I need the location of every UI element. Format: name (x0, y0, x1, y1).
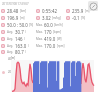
staticText: [m] (11, 56, 16, 60)
staticText: 80.7 (15, 49, 24, 55)
staticText: 170 (44, 29, 52, 35)
staticText: [bpm] (53, 30, 61, 34)
button[interactable]: Avg. (0, 28, 35, 35)
button[interactable]: 235.9 (65, 7, 100, 14)
staticText: [%] (81, 16, 86, 20)
button[interactable]: Max. (35, 35, 65, 42)
staticText: / (28, 44, 30, 48)
staticText: 146 (15, 36, 23, 42)
button[interactable]: Max. (35, 28, 65, 35)
staticText: [km/h] (54, 23, 63, 27)
button[interactable]: Avg. (0, 35, 35, 42)
staticText: Avg. (7, 50, 14, 54)
button[interactable]: 50.0 : 50.0 (0, 21, 35, 28)
staticText: Avg. (7, 30, 14, 34)
staticText: [m/kg] (52, 16, 61, 20)
button[interactable]: Max. (35, 42, 65, 49)
button[interactable]: Avg. (0, 42, 35, 49)
staticText: / (25, 30, 27, 34)
button[interactable]: 3.02 (35, 14, 65, 21)
staticText: 30.7 (15, 29, 24, 35)
button[interactable]: 28.48 (0, 7, 35, 14)
staticText: 28.48 (7, 8, 19, 14)
staticText: / (24, 37, 26, 41)
staticText: 196.9 (7, 15, 19, 21)
staticText: [km] (20, 9, 26, 13)
button[interactable]: Max. (35, 21, 65, 28)
staticText: Avg. (7, 44, 14, 48)
button[interactable]: 0:55:42 (35, 7, 65, 14)
staticText: Max. (36, 23, 43, 27)
staticText: 40 (8, 57, 11, 61)
staticText: 3.02 (42, 15, 51, 21)
staticText: 60.0 (44, 22, 53, 28)
staticText: [m] (85, 9, 90, 13)
staticText: / (25, 50, 27, 54)
staticText: Avg. (7, 37, 14, 41)
button[interactable]: -0.1 (65, 14, 100, 21)
staticText: 50.0 : 50.0 (7, 22, 28, 28)
staticText: Max. (36, 37, 43, 41)
staticText: 20 (8, 70, 11, 74)
staticText: -0.1 (72, 15, 80, 21)
staticText: [rpm] (57, 44, 65, 48)
staticText: [W] (57, 37, 62, 41)
staticText: [m] (20, 16, 25, 20)
staticText: [%] (29, 23, 34, 27)
staticText: Max. (36, 44, 43, 48)
staticText: 419.0 (44, 36, 56, 42)
button[interactable]: 196.9 (0, 14, 35, 21)
staticText: 2017/07/08 17:39:57 (2, 2, 29, 6)
button[interactable]: Avg. (0, 49, 35, 55)
staticText: 0:55:42 (42, 8, 57, 14)
staticText: 170.0 (44, 43, 56, 49)
staticText: 163.0 (15, 43, 27, 49)
button[interactable]: Edit (88, 1, 98, 11)
staticText: Max. (36, 30, 43, 34)
staticText: 235.9 (72, 8, 84, 14)
